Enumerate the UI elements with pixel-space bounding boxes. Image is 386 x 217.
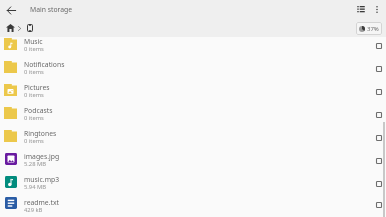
staticText: Notifications	[24, 60, 65, 69]
button[interactable]: Select images.jpg	[372, 154, 386, 168]
button[interactable]: Podcasts	[0, 103, 386, 126]
button[interactable]: readme.txt	[0, 195, 386, 214]
button[interactable]: Ringtones	[0, 126, 386, 149]
staticText: 5.28 MB	[24, 160, 47, 168]
staticText: readme.txt	[24, 198, 60, 207]
staticText: 0 items	[24, 114, 44, 122]
button[interactable]: images.jpg	[0, 149, 386, 172]
staticText: 0 items	[24, 45, 44, 53]
staticText: images.jpg	[24, 152, 60, 161]
button[interactable]: Select music.mp3	[372, 177, 386, 191]
staticText: Podcasts	[24, 106, 53, 115]
staticText: Main storage	[30, 5, 73, 14]
staticText: 429 kB	[24, 206, 43, 214]
staticText: 5.94 MB	[24, 183, 47, 191]
button[interactable]: music.mp3	[0, 172, 386, 195]
button[interactable]: Back	[3, 2, 19, 18]
staticText: Ringtones	[24, 129, 57, 138]
staticText: 0 items	[24, 137, 44, 145]
staticText: Music	[24, 37, 43, 46]
button[interactable]: 37%	[356, 22, 382, 35]
button[interactable]: Select Ringtones	[372, 131, 386, 145]
button[interactable]: Select Music	[372, 39, 386, 53]
button[interactable]: Notifications	[0, 57, 386, 80]
button[interactable]: Pictures	[0, 80, 386, 103]
button[interactable]: Select Notifications	[372, 62, 386, 76]
button[interactable]: List view	[353, 1, 369, 17]
button[interactable]: Select Pictures	[372, 85, 386, 99]
button[interactable]: Select Podcasts	[372, 108, 386, 122]
staticText: 37%	[367, 25, 379, 33]
button[interactable]: Breadcrumb Home	[6, 24, 33, 32]
staticText: 0 items	[24, 68, 44, 76]
button[interactable]: Select readme.txt	[372, 198, 386, 212]
button[interactable]: More options	[369, 1, 385, 17]
staticText: 0 items	[24, 91, 44, 99]
staticText: Pictures	[24, 83, 50, 92]
button[interactable]: Music	[0, 34, 386, 57]
staticText: music.mp3	[24, 175, 60, 184]
